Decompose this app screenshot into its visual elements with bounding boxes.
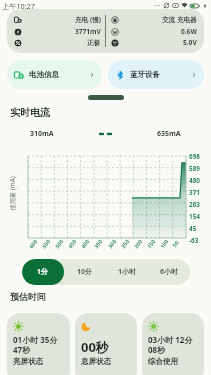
staticText: 310mA: [30, 129, 54, 139]
staticText: 6小时: [160, 267, 179, 277]
staticText: 03小时 12分 08秒: [148, 334, 193, 356]
staticText: 使用量 (mA): [7, 173, 16, 213]
staticText: 45: [189, 224, 197, 233]
staticText: 交流 充电器: [162, 15, 197, 24]
staticText: 00秒: [81, 338, 109, 356]
staticText: 450: [66, 237, 78, 250]
staticText: 250: [119, 237, 131, 250]
staticText: 371: [189, 188, 200, 197]
button[interactable]: 1分: [22, 259, 64, 285]
button[interactable]: 10分: [64, 259, 106, 285]
button[interactable]: 蓝牙设备: [108, 60, 204, 89]
staticText: 电池信息: [29, 70, 59, 79]
button[interactable]: 电池信息: [7, 60, 102, 89]
staticText: 550: [40, 237, 52, 250]
staticText: 上午10:27: [2, 1, 35, 11]
button[interactable]: 00秒: [75, 313, 137, 375]
staticText: 10分: [77, 267, 93, 277]
button[interactable]: 01小时 35分 47秒: [7, 313, 70, 375]
staticText: 154: [189, 212, 200, 221]
staticText: 充电 (慢): [75, 15, 101, 24]
staticText: 1分: [37, 267, 49, 277]
staticText: 263: [189, 200, 200, 209]
staticText: 500: [53, 237, 65, 250]
staticText: 600: [27, 237, 39, 250]
staticText: 589: [189, 164, 200, 173]
staticText: 100: [158, 237, 170, 250]
staticText: 息屏状态: [81, 357, 111, 366]
staticText: 350: [92, 237, 104, 250]
staticText: 实时电流: [10, 106, 50, 119]
staticText: 3771mV: [75, 27, 101, 36]
staticText: 698: [189, 152, 200, 161]
staticText: 01小时 35分 47秒: [13, 334, 58, 356]
staticText: 635mA: [157, 129, 181, 139]
staticText: 预估时间: [10, 291, 46, 302]
staticText: 400: [79, 237, 91, 250]
button[interactable]: 1小时: [106, 259, 148, 285]
staticText: 1小时: [118, 267, 137, 277]
staticText: 480: [189, 176, 200, 185]
button[interactable]: 03小时 12分 08秒: [142, 313, 204, 375]
staticText: -63: [189, 236, 199, 245]
staticText: 蓝牙设备: [130, 70, 160, 79]
staticText: 50: [171, 239, 180, 248]
staticText: 300: [106, 237, 118, 250]
staticText: 5.0V: [183, 38, 197, 47]
staticText: 200: [132, 237, 144, 250]
staticText: 0.6W: [181, 27, 197, 36]
staticText: 综合使用: [148, 357, 178, 366]
button[interactable]: 6小时: [148, 259, 190, 285]
staticText: 150: [145, 237, 157, 250]
staticText: 正极: [87, 39, 101, 47]
staticText: 亮屏状态: [13, 357, 43, 366]
